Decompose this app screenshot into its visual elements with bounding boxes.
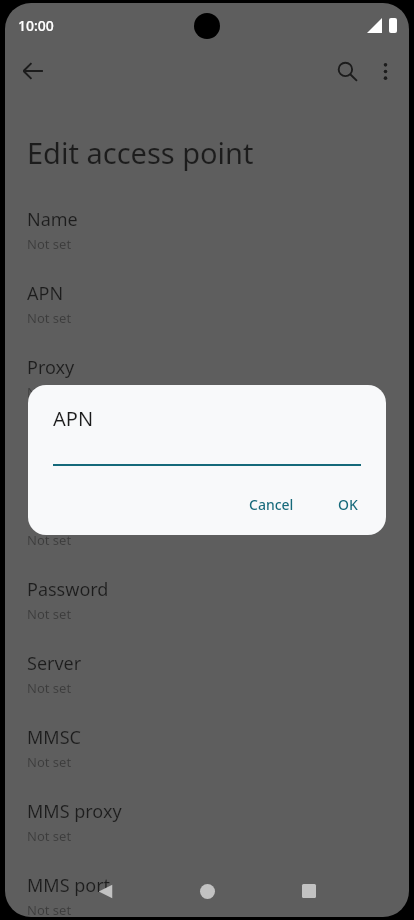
staticText: MMSC	[27, 725, 81, 750]
staticText: Not set	[27, 605, 72, 623]
button[interactable]: Port	[5, 428, 409, 502]
button[interactable]: More options	[363, 49, 407, 93]
staticText: APN	[27, 281, 64, 306]
staticText: Not set	[27, 531, 72, 549]
button[interactable]: Username	[5, 502, 409, 576]
staticText: 10:00	[18, 16, 54, 35]
button[interactable]: Back	[11, 49, 55, 93]
staticText: Cancel	[249, 495, 294, 514]
button[interactable]: Back	[83, 869, 127, 913]
staticText: MMS port	[27, 873, 111, 898]
staticText: Not set	[27, 827, 72, 845]
button[interactable]: Home	[185, 869, 229, 913]
staticText: Server	[27, 651, 82, 676]
staticText: Name	[27, 207, 78, 232]
button[interactable]: Cancel	[237, 487, 306, 522]
button[interactable]: MMS proxy	[5, 798, 409, 872]
button[interactable]: MMSC	[5, 724, 409, 798]
staticText: Port	[27, 429, 63, 454]
staticText: Not set	[27, 235, 72, 253]
button[interactable]: OK	[326, 487, 370, 522]
button[interactable]: Password	[5, 576, 409, 650]
staticText: MMS proxy	[27, 799, 122, 824]
staticText: Not set	[27, 383, 72, 401]
staticText: Username	[27, 503, 115, 528]
staticText: Edit access point	[27, 133, 254, 172]
staticText: Not set	[27, 309, 72, 327]
staticText: Password	[27, 577, 109, 602]
staticText: OK	[338, 495, 358, 514]
button[interactable]: Name	[5, 206, 409, 280]
button[interactable]: Recent apps	[287, 869, 331, 913]
staticText: Not set	[27, 457, 72, 475]
button[interactable]: Server	[5, 650, 409, 724]
staticText: Not set	[27, 901, 72, 917]
button[interactable]: APN	[5, 280, 409, 354]
button[interactable]: MMS port	[5, 872, 409, 917]
staticText: Not set	[27, 679, 72, 697]
staticText: Not set	[27, 753, 72, 771]
button[interactable]: Proxy	[5, 354, 409, 428]
button[interactable]: Search	[325, 49, 369, 93]
staticText: APN	[53, 405, 94, 432]
staticText: Proxy	[27, 355, 75, 380]
